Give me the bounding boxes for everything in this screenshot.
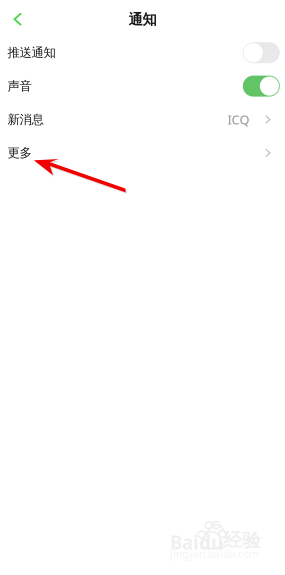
staticText: 新消息 [7,112,43,127]
staticText: 经验 [223,528,261,552]
staticText: 更多 [7,145,31,161]
button[interactable]: 新消息 [0,103,285,136]
button[interactable]: 声音 [0,69,285,103]
button[interactable]: 更多 [0,136,285,170]
staticText: 通知 [128,10,156,28]
staticText: 声音 [7,78,31,94]
staticText: jingyan.baidu.com [170,547,258,561]
staticText: ICQ [227,111,249,128]
button[interactable]: Back [4,3,30,33]
button[interactable]: 推送通知 [0,36,285,69]
staticText: 推送通知 [7,45,55,60]
staticText: Baidu [170,529,223,555]
